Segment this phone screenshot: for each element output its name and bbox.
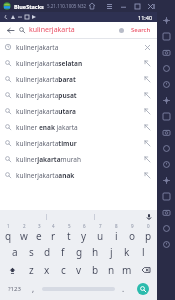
button[interactable]: 6 <box>76 223 92 243</box>
button[interactable]: s <box>23 243 39 261</box>
button[interactable]: 9 <box>124 223 140 243</box>
button[interactable]: Camera <box>158 60 174 76</box>
button[interactable]: c <box>55 261 71 279</box>
button[interactable]: kulinerjakartamurah <box>0 151 157 167</box>
button[interactable]: Location <box>158 92 174 108</box>
button[interactable]: Minimize <box>119 2 128 11</box>
button[interactable]: Insert suggestion <box>142 154 152 164</box>
button[interactable]: 4 <box>46 223 61 243</box>
button[interactable]: kulinerjakartautara <box>0 103 157 119</box>
button[interactable]: Remove <box>142 42 152 52</box>
button[interactable]: n <box>103 261 119 279</box>
button[interactable]: h <box>87 243 103 261</box>
staticText: 8 <box>115 223 118 229</box>
button[interactable]: kulinerjakartapusat <box>0 87 157 103</box>
button[interactable]: 8 <box>108 223 124 243</box>
staticText: x <box>44 263 50 277</box>
button[interactable]: Search <box>129 26 153 34</box>
button[interactable]: Insert suggestion <box>142 74 152 84</box>
button[interactable]: 5 <box>61 223 76 243</box>
staticText: kulinerjakarta <box>16 43 142 52</box>
button[interactable]: z <box>23 261 39 279</box>
staticText: kulinerjakartatimur <box>16 139 142 148</box>
button[interactable]: Home <box>87 1 97 11</box>
button[interactable]: a <box>6 243 23 261</box>
button[interactable]: Game controls <box>158 220 174 236</box>
button[interactable]: d <box>39 243 55 261</box>
staticText: h <box>92 245 99 259</box>
button[interactable]: Paste <box>158 188 174 204</box>
staticText: n <box>108 263 115 277</box>
button[interactable]: Menu <box>105 2 114 11</box>
button[interactable]: 0 <box>140 223 156 243</box>
staticText: p <box>145 229 152 243</box>
staticText: m <box>122 263 132 277</box>
button[interactable]: g <box>71 243 87 261</box>
button[interactable]: Shake <box>158 108 174 124</box>
button[interactable]: Voice input <box>142 210 155 223</box>
button[interactable]: Sync <box>158 204 174 220</box>
button[interactable]: Macro <box>158 140 174 156</box>
button[interactable]: Insert suggestion <box>142 122 152 132</box>
button[interactable]: kulinerjakartabarat <box>0 71 157 87</box>
button[interactable]: . <box>117 279 130 298</box>
button[interactable]: Volume <box>158 28 174 44</box>
staticText: z <box>29 263 34 277</box>
button[interactable]: Screenshot <box>158 44 174 60</box>
button[interactable]: v <box>71 261 87 279</box>
staticText: y <box>81 229 87 243</box>
staticText: kulinerjakarta <box>29 25 116 35</box>
button[interactable]: Clear <box>116 25 126 35</box>
button[interactable]: j <box>103 243 119 261</box>
button[interactable]: ?123 <box>2 279 27 298</box>
button[interactable]: 2 <box>16 223 31 243</box>
staticText: kulinerjakartamurah <box>16 155 142 164</box>
staticText: g <box>76 245 83 259</box>
button[interactable]: Full screen <box>158 12 174 28</box>
button[interactable]: Maximize <box>133 2 142 11</box>
button[interactable]: Insert suggestion <box>142 170 152 180</box>
button[interactable]: Eye comfort <box>158 236 174 252</box>
button[interactable]: f <box>55 243 71 261</box>
button[interactable]: kulinerjakartaanak <box>0 167 157 183</box>
button[interactable]: Shift <box>1 261 23 279</box>
staticText: 5 <box>68 223 71 229</box>
button[interactable]: Record <box>158 124 174 140</box>
staticText: 1 <box>7 223 10 229</box>
button[interactable]: Insert suggestion <box>142 138 152 148</box>
button[interactable]: Insert suggestion <box>142 106 152 116</box>
button[interactable]: Backspace <box>135 261 156 279</box>
staticText: BlueStacks <box>14 3 44 10</box>
button[interactable]: kulinerjakartaselatan <box>0 55 157 71</box>
button[interactable]: Rotate <box>158 76 174 92</box>
button[interactable]: 7 <box>92 223 108 243</box>
button[interactable]: kuliner enak jakarta <box>0 119 157 135</box>
staticText: 2 <box>23 223 26 229</box>
button[interactable]: Search <box>137 283 149 295</box>
button[interactable]: Insert suggestion <box>142 90 152 100</box>
button[interactable]: , <box>27 279 40 298</box>
button[interactable]: 1 <box>1 223 16 243</box>
button[interactable]: Back <box>4 24 16 36</box>
staticText: ?123 <box>8 285 21 293</box>
button[interactable]: kulinerjakartatimur <box>0 135 157 151</box>
button[interactable]: Close <box>147 2 154 11</box>
button[interactable]: kulinerjakarta <box>0 39 157 55</box>
staticText: . <box>122 283 125 294</box>
button[interactable]: x <box>39 261 55 279</box>
staticText: u <box>97 229 104 243</box>
staticText: kulinerjakartaanak <box>16 171 142 180</box>
button[interactable]: Space <box>40 279 117 298</box>
staticText: 7 <box>99 223 102 229</box>
button[interactable]: k <box>119 243 135 261</box>
button[interactable]: 3 <box>31 223 46 243</box>
button[interactable]: l <box>135 243 151 261</box>
button[interactable]: m <box>119 261 135 279</box>
button[interactable]: Insert suggestion <box>142 58 152 68</box>
button[interactable]: b <box>87 261 103 279</box>
button[interactable]: Multi instance <box>158 156 174 172</box>
staticText: 3 <box>38 223 41 229</box>
staticText: s <box>29 245 34 259</box>
button[interactable]: Copy <box>158 172 174 188</box>
staticText: v <box>76 263 82 277</box>
